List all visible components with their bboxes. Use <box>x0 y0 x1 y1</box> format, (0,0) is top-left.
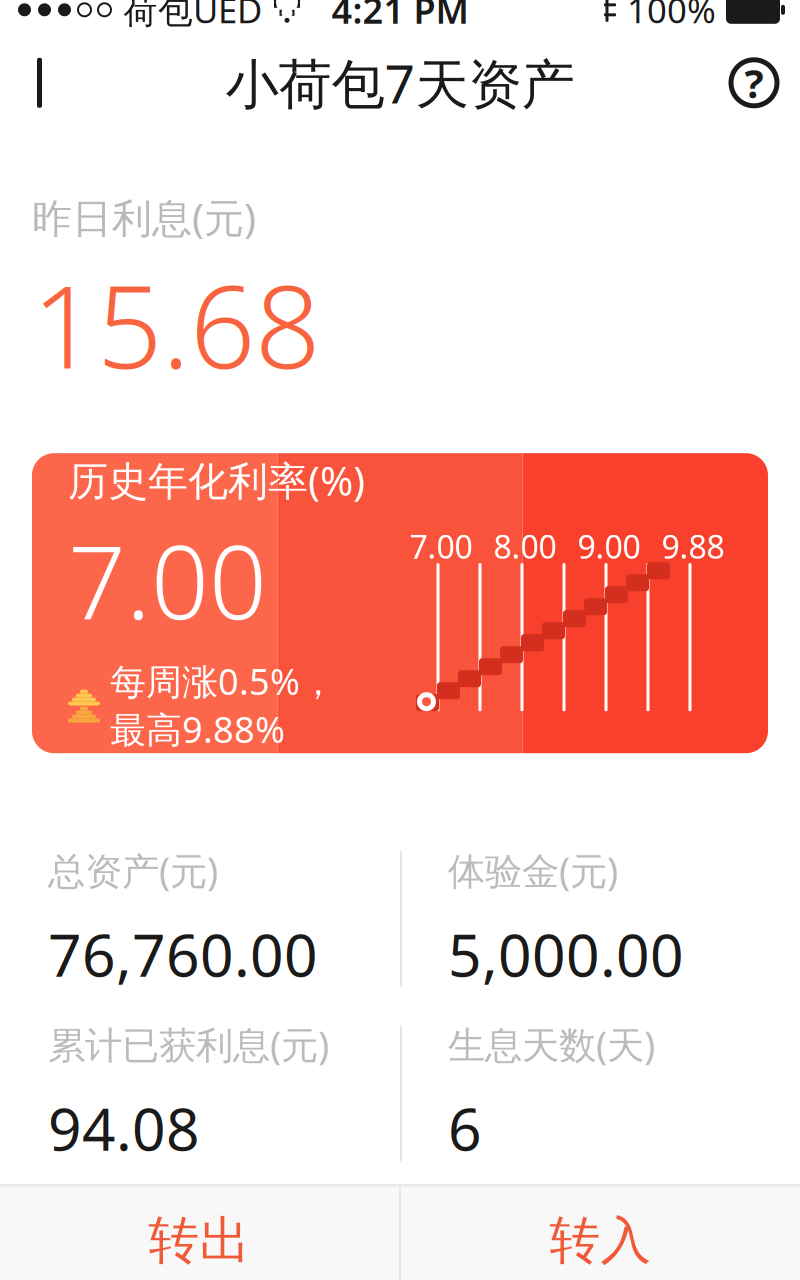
staticText: 6 <box>448 1089 482 1167</box>
staticText: 小荷包7天资产 <box>225 47 574 118</box>
staticText: 15.68 <box>32 248 320 400</box>
staticText: 9.00 <box>577 525 640 568</box>
staticText: 累计已获利息(元) <box>48 1019 329 1069</box>
staticText: 转入 <box>549 1210 651 1272</box>
button[interactable]: 转入 <box>401 1184 800 1280</box>
staticText: 9.88 <box>661 525 724 568</box>
staticText: 4:21 PM <box>331 0 468 34</box>
staticText: 94.08 <box>48 1089 200 1167</box>
staticText: 历史年化利率(%) <box>68 453 365 507</box>
staticText: 7.00 <box>68 513 267 647</box>
staticText: 体验金(元) <box>448 845 618 895</box>
staticText: 8.00 <box>493 525 556 568</box>
button[interactable]: Back <box>16 51 72 115</box>
staticText: 76,760.00 <box>48 915 318 993</box>
staticText: 7.00 <box>409 525 472 568</box>
staticText: 转出 <box>148 1210 250 1272</box>
staticText: 昨日利息(元) <box>32 191 256 244</box>
staticText: 总资产(元) <box>48 845 218 895</box>
staticText: ? <box>744 56 763 109</box>
staticText: 生息天数(天) <box>448 1019 655 1069</box>
staticText: 每周涨0.5%，最高9.88% <box>110 657 336 753</box>
staticText: 荷包UED <box>123 0 262 33</box>
staticText: 100% <box>627 0 716 33</box>
button[interactable]: Help <box>724 53 784 113</box>
button[interactable]: 转出 <box>0 1184 399 1280</box>
staticText: 5,000.00 <box>448 915 684 993</box>
